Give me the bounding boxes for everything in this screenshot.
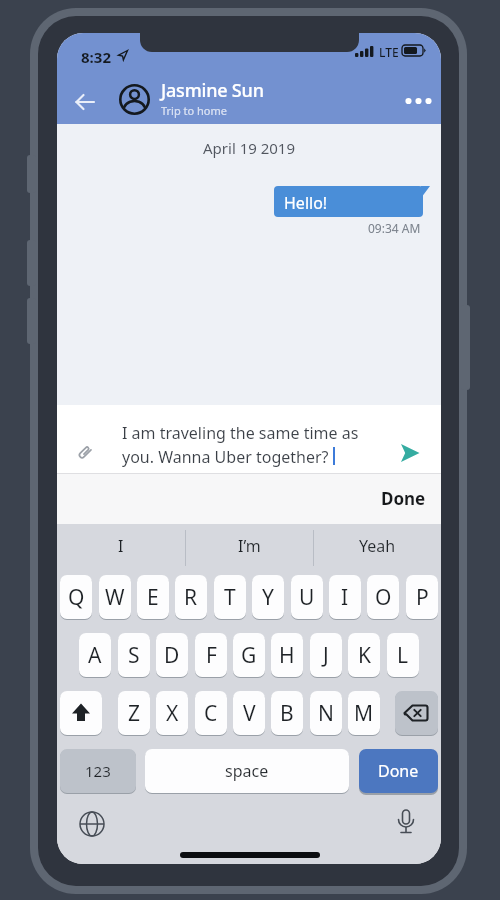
staticText: April 19 2019 [203,138,296,158]
staticText: J [323,641,329,670]
button[interactable]: C [195,691,227,735]
staticText: O [375,583,392,612]
button[interactable]: Done [326,473,426,524]
button[interactable]: Q [60,575,92,619]
button[interactable]: S [118,633,150,677]
staticText: Done [378,760,419,782]
staticText: X [166,699,179,728]
button[interactable]: Y [252,575,284,619]
staticText: you. Wanna Uber together? [122,446,329,468]
staticText: C [204,699,218,728]
button[interactable] [70,802,114,846]
staticText: K [358,641,371,670]
staticText: D [164,641,180,670]
staticText: I [341,583,349,612]
button[interactable] [389,435,429,471]
staticText: V [243,699,256,728]
button[interactable]: T [214,575,246,619]
staticText: N [318,699,334,728]
button[interactable]: P [406,575,438,619]
button[interactable]: W [99,575,131,619]
staticText: I’m [238,535,261,557]
staticText: Q [68,583,85,612]
staticText: 09:34 AM [368,220,421,236]
button[interactable]: Z [118,691,150,735]
button[interactable]: K [348,633,380,677]
staticText: Trip to home [161,103,227,118]
staticText: Y [262,583,274,612]
button[interactable] [65,89,105,115]
button[interactable] [393,87,439,115]
button[interactable]: F [195,633,227,677]
button[interactable]: H [271,633,303,677]
staticText: A [88,641,102,670]
button[interactable]: B [271,691,303,735]
button[interactable] [395,691,438,735]
staticText: I am traveling the same time as [122,422,359,444]
button[interactable]: I [329,575,361,619]
button[interactable]: A [79,633,111,677]
button[interactable]: N [310,691,342,735]
button[interactable]: D [156,633,188,677]
button[interactable]: M [348,691,380,735]
staticText: S [128,641,140,670]
staticText: 123 [85,761,111,781]
button[interactable]: Done [359,749,438,793]
button[interactable] [60,691,102,735]
staticText: Z [128,699,141,728]
button[interactable]: R [175,575,207,619]
staticText: G [241,641,257,670]
button[interactable]: 123 [60,749,136,793]
button[interactable]: U [291,575,323,619]
staticText: I [118,535,124,557]
staticText: Done [381,487,426,510]
staticText: L [397,641,409,670]
staticText: LTE [379,44,399,60]
button[interactable]: L [387,633,419,677]
button[interactable]: O [367,575,399,619]
staticText: F [206,641,217,670]
staticText: E [147,583,159,612]
staticText: 8:32 [81,47,111,67]
staticText: H [279,641,295,670]
staticText: W [105,583,125,612]
staticText: T [224,583,236,612]
button[interactable]: V [233,691,265,735]
staticText: Hello! [284,192,328,214]
button[interactable]: J [310,633,342,677]
staticText: B [280,699,294,728]
button[interactable]: E [137,575,169,619]
staticText: Jasmine Sun [161,78,264,103]
staticText: U [299,583,315,612]
staticText: Yeah [359,535,396,557]
staticText: M [354,699,374,728]
staticText: P [416,583,429,612]
button[interactable] [384,802,428,846]
staticText: space [225,760,269,782]
button[interactable]: space [145,749,349,793]
button[interactable]: G [233,633,265,677]
staticText: R [184,583,198,612]
button[interactable]: X [156,691,188,735]
